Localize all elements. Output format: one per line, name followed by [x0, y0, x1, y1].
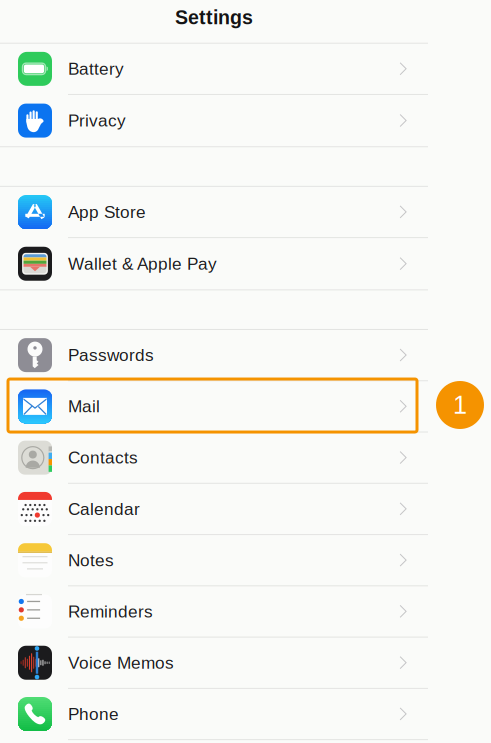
staticText: Wallet & Apple Pay — [68, 254, 217, 273]
staticText: Battery — [68, 59, 124, 78]
staticText: Phone — [68, 704, 119, 724]
staticText: Settings — [175, 7, 253, 28]
staticText: Calendar — [68, 499, 140, 518]
button[interactable]: Notes — [0, 535, 428, 586]
button[interactable]: Battery — [0, 44, 428, 95]
button[interactable]: Contacts — [0, 432, 428, 484]
button[interactable]: Privacy — [0, 95, 428, 146]
staticText: Voice Memos — [68, 653, 174, 672]
staticText: Privacy — [68, 111, 126, 130]
button[interactable]: Calendar — [0, 484, 428, 535]
button[interactable]: App Store — [0, 187, 428, 238]
button[interactable]: Phone — [0, 689, 428, 740]
button[interactable]: Reminders — [0, 586, 428, 638]
staticText: 1 — [453, 391, 467, 419]
button[interactable]: Passwords — [0, 330, 428, 381]
staticText: Notes — [68, 551, 114, 570]
staticText: Reminders — [68, 602, 153, 621]
staticText: Passwords — [68, 345, 154, 365]
button[interactable]: Voice Memos — [0, 638, 428, 689]
button[interactable]: Mail — [0, 381, 428, 432]
staticText: App Store — [68, 202, 146, 222]
button[interactable]: Wallet & Apple Pay — [0, 238, 428, 289]
staticText: Mail — [68, 397, 100, 416]
staticText: Contacts — [68, 448, 138, 467]
